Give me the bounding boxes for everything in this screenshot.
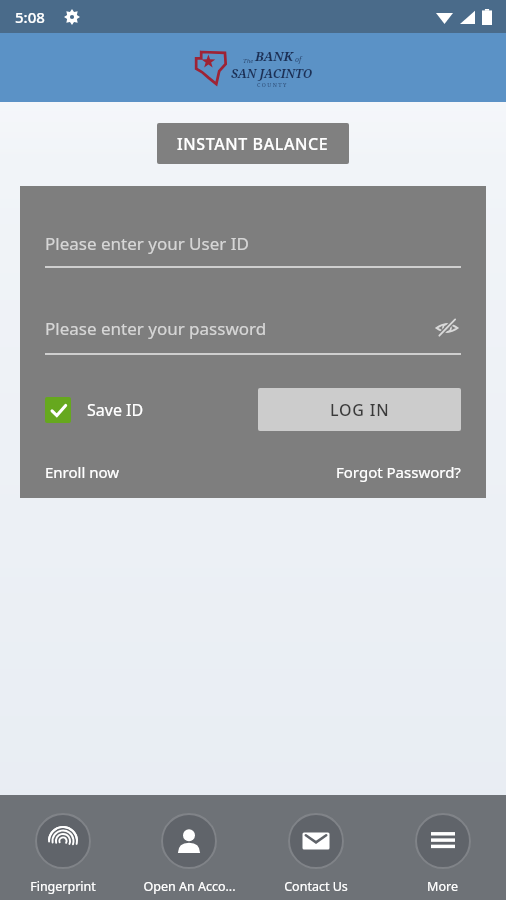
button[interactable]: Please enter your password [45,314,461,355]
button[interactable]: Save ID [45,397,144,423]
button[interactable]: Please enter your User ID [45,232,461,268]
staticText: LOG IN [330,399,390,421]
staticText: Open An Acco... [143,878,236,895]
staticText: Please enter your password [45,317,433,340]
button[interactable]: INSTANT BALANCE [157,123,349,164]
button[interactable]: LOG IN [258,388,461,431]
staticText: Fingerprint [30,878,96,895]
button[interactable]: Enroll now [45,462,120,482]
button[interactable]: More [379,801,506,895]
staticText: of [295,55,302,65]
staticText: BANK [255,47,294,65]
staticText: C O U N T Y [257,81,287,88]
button[interactable]: Show password [433,314,461,342]
button[interactable]: Contact Us [252,801,379,895]
staticText: SAN JACINTO [231,65,313,81]
staticText: Forgot Password? [336,462,461,482]
staticText: INSTANT BALANCE [177,133,329,155]
staticText: Enroll now [45,462,120,482]
button[interactable]: Open An Acco... [126,801,252,895]
staticText: The [243,57,254,65]
button[interactable]: Fingerprint [0,801,126,895]
staticText: Contact Us [284,878,348,895]
button[interactable]: Forgot Password? [336,462,461,482]
staticText: 5:08 [15,7,45,27]
staticText: Save ID [87,399,144,421]
staticText: Please enter your User ID [45,232,461,255]
staticText: More [427,878,458,895]
